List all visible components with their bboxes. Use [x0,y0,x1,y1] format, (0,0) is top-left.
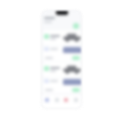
button[interactable]: Favourites [62,95,70,104]
button[interactable] [43,78,81,93]
button[interactable]: Search [53,95,61,104]
button[interactable]: Profile [73,23,79,29]
button[interactable]: Profile [72,95,80,104]
button[interactable]: Home [43,95,51,104]
button[interactable] [43,46,81,61]
button[interactable] [43,62,81,77]
button[interactable] [43,30,81,45]
